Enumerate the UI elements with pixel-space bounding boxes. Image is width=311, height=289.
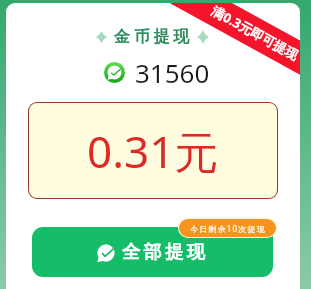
staticText: 今日剩余10次提现: [190, 223, 266, 234]
button[interactable]: 全部提现: [32, 227, 273, 277]
staticText: 31560: [135, 55, 210, 90]
staticText: 满0.3元即可提现: [208, 3, 300, 64]
staticText: 0.31元: [87, 121, 219, 181]
staticText: 金币提现: [114, 27, 193, 47]
staticText: 全部提现: [122, 241, 209, 264]
button[interactable]: 今日剩余10次提现: [179, 219, 276, 237]
